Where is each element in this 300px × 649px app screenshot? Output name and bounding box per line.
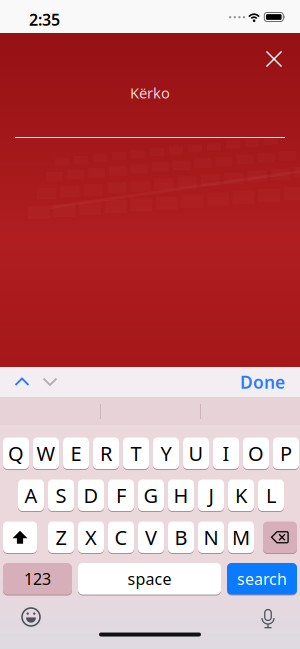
staticText: G	[143, 482, 158, 509]
button[interactable]: S	[48, 479, 74, 511]
button[interactable]: X	[78, 521, 104, 553]
staticText: B	[174, 524, 187, 551]
button[interactable]: search	[227, 562, 297, 595]
staticText: Kërko	[130, 83, 170, 102]
button[interactable]: Delete	[263, 521, 297, 553]
button[interactable]: Done	[240, 367, 285, 397]
button[interactable]: I	[213, 437, 239, 469]
staticText: Z	[55, 524, 66, 551]
button[interactable]: Y	[153, 437, 179, 469]
button[interactable]: Z	[48, 521, 74, 553]
staticText: W	[36, 440, 55, 467]
staticText: P	[280, 440, 292, 467]
button[interactable]: N	[198, 521, 224, 553]
button[interactable]: F	[108, 479, 134, 511]
staticText: 123	[24, 568, 51, 589]
staticText: N	[203, 524, 218, 551]
staticText: O	[248, 440, 264, 467]
button[interactable]: E	[63, 437, 89, 469]
button[interactable]: K	[228, 479, 254, 511]
staticText: U	[188, 440, 203, 467]
button[interactable]: H	[168, 479, 194, 511]
button[interactable]: T	[123, 437, 149, 469]
staticText: 2:35	[29, 9, 60, 30]
staticText: D	[83, 482, 98, 509]
button[interactable]: Dictation	[255, 602, 281, 628]
staticText: space	[127, 568, 171, 589]
staticText: X	[85, 524, 97, 551]
button[interactable]: W	[33, 437, 59, 469]
button[interactable]: space	[78, 562, 221, 595]
button[interactable]: R	[93, 437, 119, 469]
button[interactable]: G	[138, 479, 164, 511]
button[interactable]: P	[273, 437, 299, 469]
staticText: T	[130, 440, 141, 467]
button[interactable]: J	[198, 479, 224, 511]
button[interactable]: Next field	[38, 370, 62, 394]
staticText: S	[55, 482, 66, 509]
button[interactable]: C	[108, 521, 134, 553]
button[interactable]: Close	[259, 44, 289, 74]
button[interactable]: Emoji	[16, 602, 46, 632]
staticText: L	[266, 482, 276, 509]
button[interactable]: B	[168, 521, 194, 553]
staticText: I	[222, 440, 229, 467]
staticText: E	[70, 440, 81, 467]
button[interactable]: Previous field	[10, 370, 34, 394]
staticText: Y	[160, 440, 171, 467]
button[interactable]: U	[183, 437, 209, 469]
staticText: M	[232, 524, 250, 551]
staticText: J	[208, 482, 213, 509]
button[interactable]: D	[78, 479, 104, 511]
button[interactable]: M	[228, 521, 254, 553]
staticText: F	[116, 482, 126, 509]
button[interactable]: L	[258, 479, 284, 511]
staticText: H	[173, 482, 188, 509]
button[interactable]: V	[138, 521, 164, 553]
staticText: A	[24, 482, 37, 509]
button[interactable]: Shift	[3, 521, 37, 553]
button[interactable]: O	[243, 437, 269, 469]
staticText: search	[237, 568, 287, 589]
staticText: Q	[8, 440, 24, 467]
button[interactable]: A	[18, 479, 44, 511]
staticText: V	[145, 524, 157, 551]
button[interactable]: 123	[3, 562, 72, 595]
staticText: K	[235, 482, 247, 509]
button[interactable]: Q	[3, 437, 29, 469]
staticText: C	[114, 524, 127, 551]
staticText: Done	[240, 370, 285, 393]
staticText: R	[100, 440, 112, 467]
